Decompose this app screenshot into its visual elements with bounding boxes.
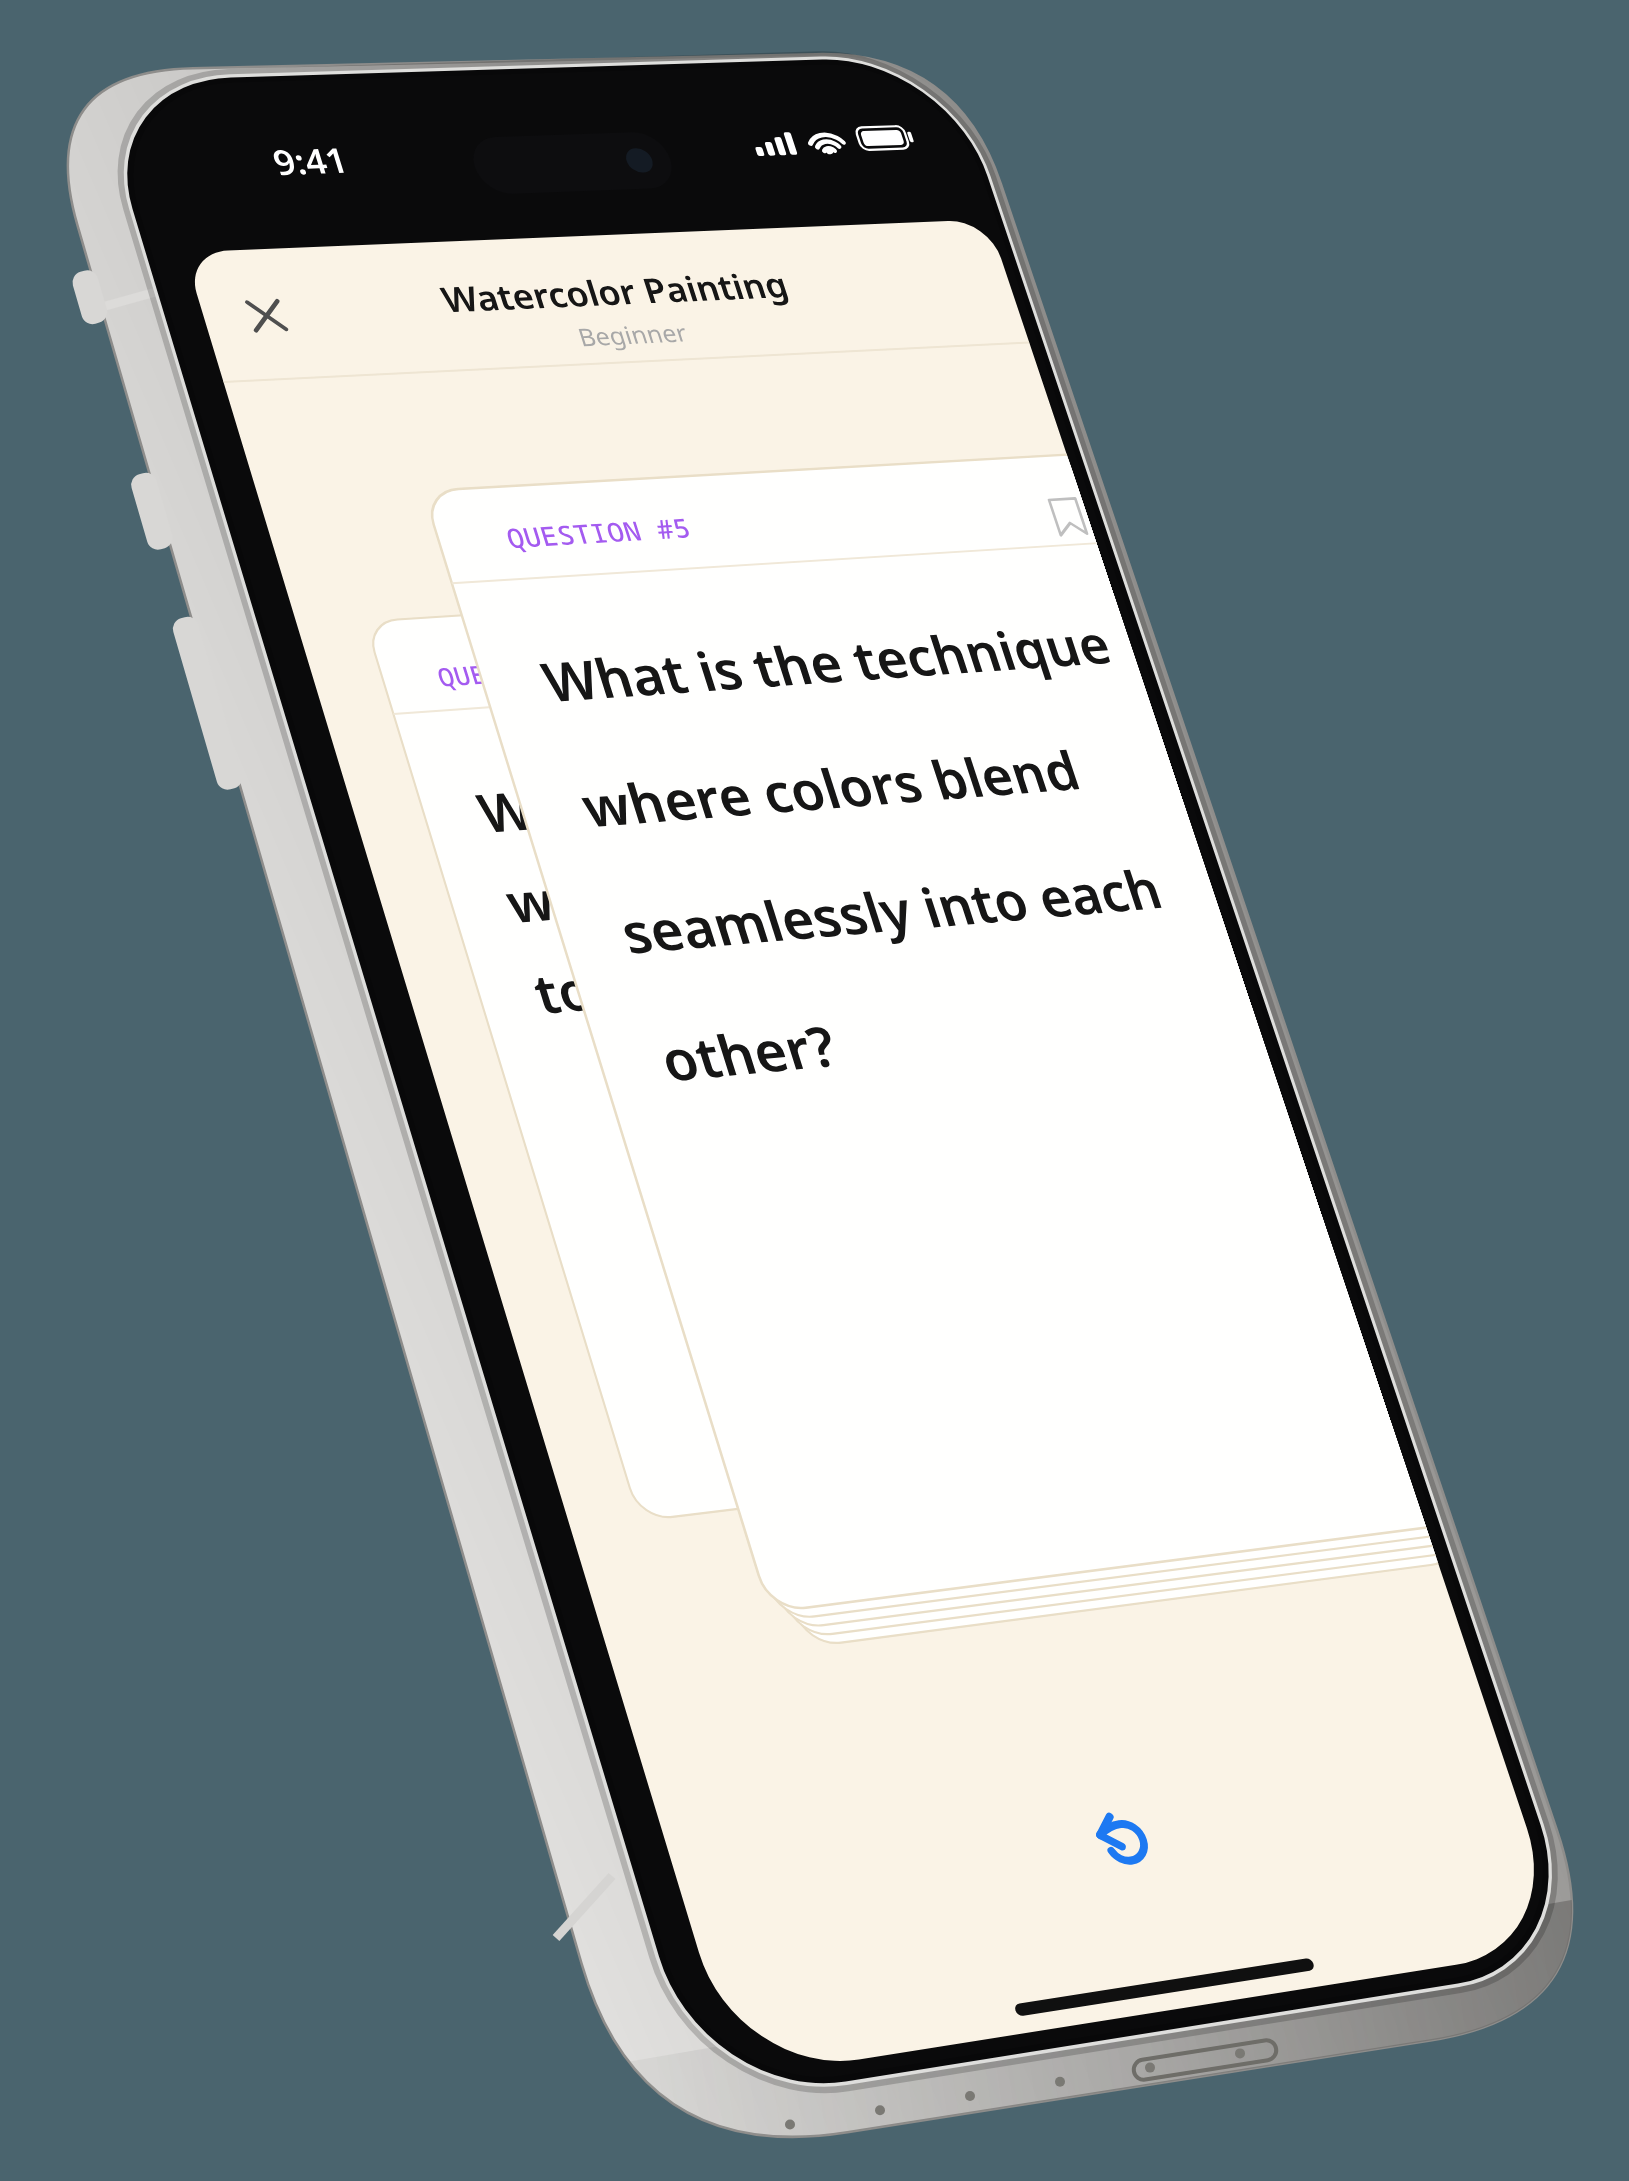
button[interactable] [225,275,310,360]
button[interactable] [430,450,1030,1450]
button[interactable] [1080,1800,1160,1880]
button[interactable] [1040,485,1110,555]
